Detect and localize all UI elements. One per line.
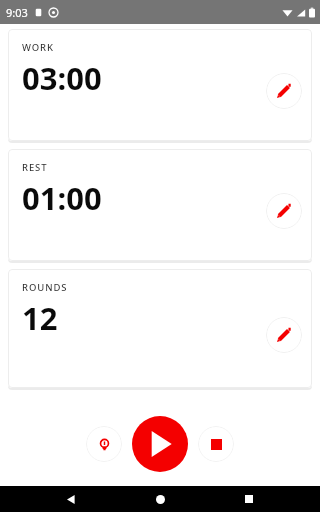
button[interactable]: Back [53, 486, 89, 512]
staticText: REST [22, 161, 48, 174]
button[interactable]: ROUNDS [8, 269, 312, 388]
button[interactable]: Recent apps [231, 486, 267, 512]
staticText: 12 [22, 297, 58, 339]
button[interactable]: Edit WORK [266, 73, 302, 109]
staticText: ROUNDS [22, 281, 68, 294]
button[interactable]: REST [8, 149, 312, 261]
button[interactable]: Edit ROUNDS [266, 317, 302, 353]
staticText: 9:03 [6, 5, 28, 20]
staticText: WORK [22, 41, 54, 54]
button[interactable]: Stop [198, 426, 234, 462]
button[interactable]: Flashlight [86, 426, 122, 462]
staticText: 03:00 [22, 57, 102, 99]
button[interactable]: Start [132, 416, 188, 472]
button[interactable]: WORK [8, 29, 312, 141]
button[interactable]: Edit REST [266, 193, 302, 229]
button[interactable]: Home [142, 486, 178, 512]
staticText: 01:00 [22, 177, 102, 219]
